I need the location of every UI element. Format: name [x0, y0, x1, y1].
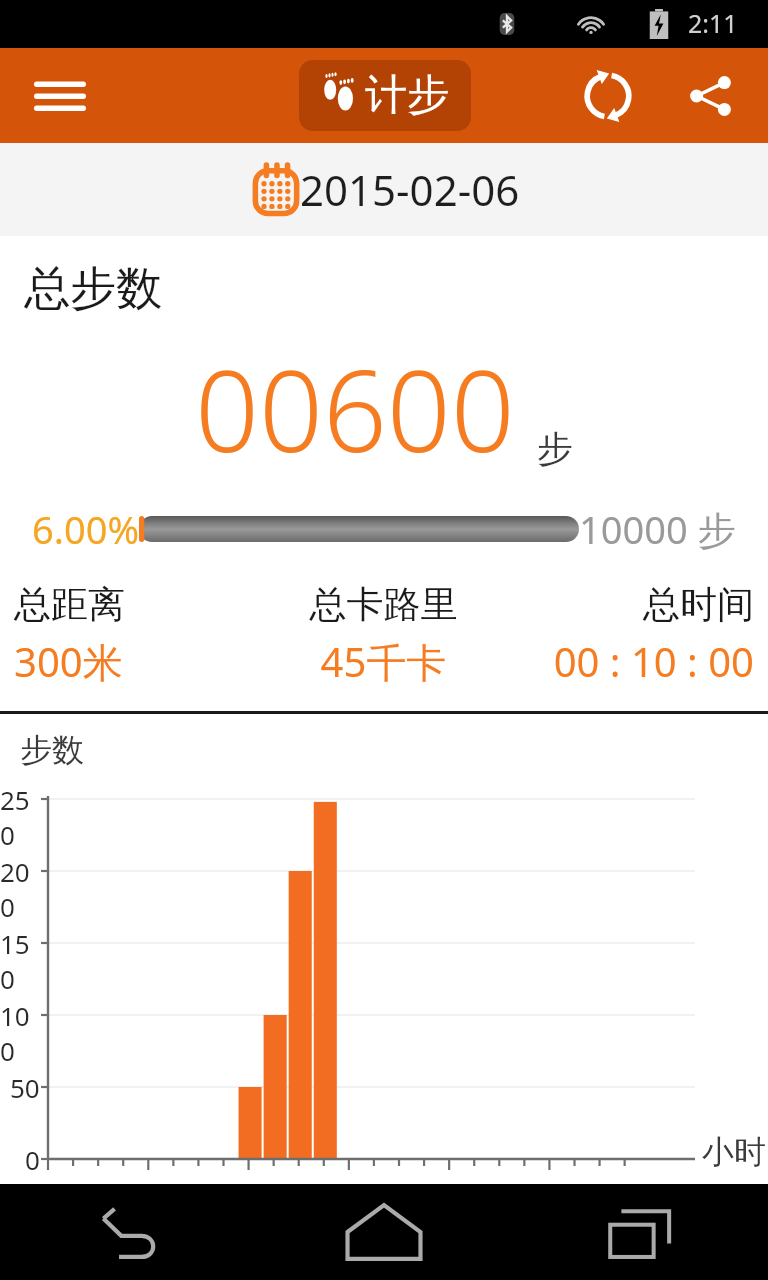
staticText: 总卡路里 — [260, 581, 507, 628]
staticText: 步 — [537, 426, 573, 471]
staticText: 100 — [0, 998, 40, 1068]
button[interactable]: Menu — [16, 52, 104, 140]
staticText: 4 — [141, 1174, 156, 1209]
staticText: 12 — [334, 1174, 364, 1209]
staticText: 总步数 — [24, 260, 162, 318]
staticText: 300米 — [14, 634, 260, 689]
button[interactable]: Recents — [512, 1184, 768, 1280]
staticText: 计步 — [365, 69, 449, 122]
staticText: 45千卡 — [260, 634, 507, 689]
staticText: 10000 步 — [579, 503, 736, 555]
staticText: 16 — [434, 1174, 464, 1209]
staticText: 2015-02-06 — [300, 161, 520, 218]
staticText: 00600 — [195, 332, 515, 485]
button[interactable]: Share — [670, 56, 750, 136]
button[interactable]: Refresh — [568, 56, 648, 136]
button[interactable]: 计步 — [299, 60, 471, 131]
button[interactable]: Home — [256, 1184, 512, 1280]
staticText: 总距离 — [14, 581, 260, 628]
staticText: 0 — [25, 1142, 40, 1177]
staticText: 总时间 — [507, 581, 754, 628]
staticText: 2:11 — [688, 6, 738, 40]
staticText: 小时 — [702, 1132, 766, 1172]
staticText: 200 — [0, 854, 40, 924]
staticText: 6.00% — [32, 503, 139, 555]
staticText: 150 — [0, 926, 40, 996]
button[interactable]: 总卡路里 — [260, 581, 507, 689]
staticText: 0 — [41, 1174, 56, 1209]
button[interactable]: 总时间 — [507, 581, 754, 688]
staticText: 50 — [10, 1070, 40, 1105]
staticText: 00 : 10 : 00 — [507, 634, 754, 688]
staticText: 250 — [0, 782, 40, 852]
staticText: 8 — [242, 1174, 257, 1209]
staticText: 步数 — [20, 730, 84, 770]
button[interactable]: Back — [0, 1184, 256, 1280]
staticText: 20 — [534, 1174, 564, 1209]
button[interactable]: 总距离 — [14, 581, 260, 689]
button[interactable]: 2015-02-06 — [0, 143, 768, 236]
